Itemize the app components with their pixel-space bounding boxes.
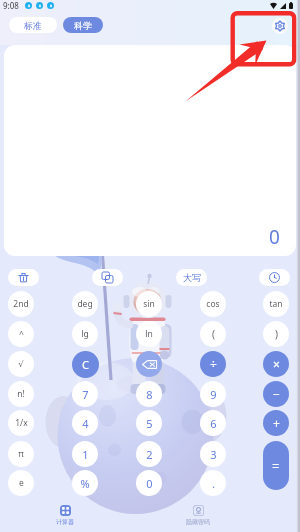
button[interactable]: C	[72, 351, 99, 378]
button[interactable]: =	[263, 441, 289, 490]
button[interactable]: tan	[263, 291, 289, 317]
staticText: 1	[82, 447, 89, 462]
button[interactable]: ^	[8, 321, 34, 347]
staticText: ^	[19, 328, 24, 340]
staticText: =	[272, 457, 280, 475]
staticText: 0	[269, 224, 280, 250]
button[interactable]: 1/x	[8, 410, 34, 436]
button[interactable]: lg	[72, 321, 98, 347]
button[interactable]: 标准	[9, 17, 57, 33]
staticText: 5	[146, 416, 153, 431]
button[interactable]: √	[8, 351, 34, 377]
button[interactable]: 0	[136, 470, 162, 496]
button[interactable]: 计算器	[40, 505, 90, 526]
staticText: 9	[210, 387, 217, 402]
button[interactable]: deg	[72, 291, 98, 317]
staticText: 9:08	[3, 0, 19, 11]
button[interactable]: π	[8, 441, 34, 467]
button[interactable]: cos	[200, 291, 226, 317]
staticText: cos	[206, 298, 220, 310]
button[interactable]: History	[259, 269, 290, 286]
button[interactable]: )	[263, 321, 289, 347]
staticText: −	[273, 386, 280, 402]
button[interactable]: sin	[136, 291, 162, 317]
staticText: ÷	[210, 356, 217, 372]
button[interactable]: 8	[136, 381, 162, 407]
button[interactable]: 1	[72, 441, 98, 467]
button[interactable]: 5	[136, 410, 162, 436]
button[interactable]: Backspace	[136, 351, 162, 377]
button[interactable]: 3	[200, 441, 226, 467]
button[interactable]: 大写	[176, 269, 207, 286]
staticText: )	[275, 327, 278, 341]
button[interactable]: 隐藏密码	[173, 505, 223, 526]
staticText: +	[273, 415, 280, 431]
staticText: 7	[82, 387, 89, 402]
button[interactable]: ×	[263, 351, 289, 377]
staticText: lg	[81, 328, 89, 340]
button[interactable]: ÷	[200, 351, 226, 377]
staticText: 6	[210, 416, 217, 431]
button[interactable]: 9	[200, 381, 226, 407]
button[interactable]: (	[200, 321, 226, 347]
button[interactable]: ln	[136, 321, 162, 347]
staticText: sin	[143, 298, 155, 310]
button[interactable]: 6	[200, 410, 226, 436]
staticText: (	[212, 327, 215, 341]
staticText: 8	[146, 387, 153, 402]
button[interactable]: 2nd	[8, 291, 34, 317]
button[interactable]: 2	[136, 441, 162, 467]
button[interactable]: Delete	[8, 269, 39, 286]
staticText: n!	[17, 388, 25, 400]
button[interactable]: +	[263, 410, 289, 436]
staticText: %	[80, 476, 90, 491]
staticText: .	[212, 476, 215, 491]
button[interactable]: 4	[72, 410, 98, 436]
staticText: 隐藏密码	[186, 518, 210, 526]
button[interactable]: e	[8, 470, 34, 496]
staticText: 标准	[24, 20, 42, 31]
staticText: 4	[82, 416, 89, 431]
staticText: 计算器	[56, 518, 74, 526]
staticText: 1/x	[15, 417, 28, 429]
button[interactable]: 科学	[63, 17, 103, 33]
button[interactable]: −	[263, 381, 289, 407]
staticText: ln	[145, 328, 153, 340]
staticText: ×	[273, 356, 280, 372]
button[interactable]: n!	[8, 381, 34, 407]
button[interactable]: Copy	[92, 269, 123, 286]
staticText: √	[18, 359, 24, 369]
button[interactable]: .	[200, 470, 226, 496]
staticText: tan	[269, 298, 283, 310]
button[interactable]: 7	[72, 381, 98, 407]
staticText: π	[18, 448, 24, 460]
staticText: 科学	[74, 20, 92, 31]
staticText: 2	[146, 447, 153, 462]
staticText: deg	[77, 298, 93, 310]
staticText: 3	[210, 447, 217, 462]
button[interactable]: %	[72, 470, 98, 496]
staticText: 2nd	[13, 298, 29, 310]
staticText: e	[19, 477, 24, 489]
button[interactable]: Settings	[272, 18, 288, 34]
staticText: C	[82, 357, 89, 372]
staticText: 0	[146, 476, 153, 491]
staticText: 大写	[183, 272, 201, 283]
